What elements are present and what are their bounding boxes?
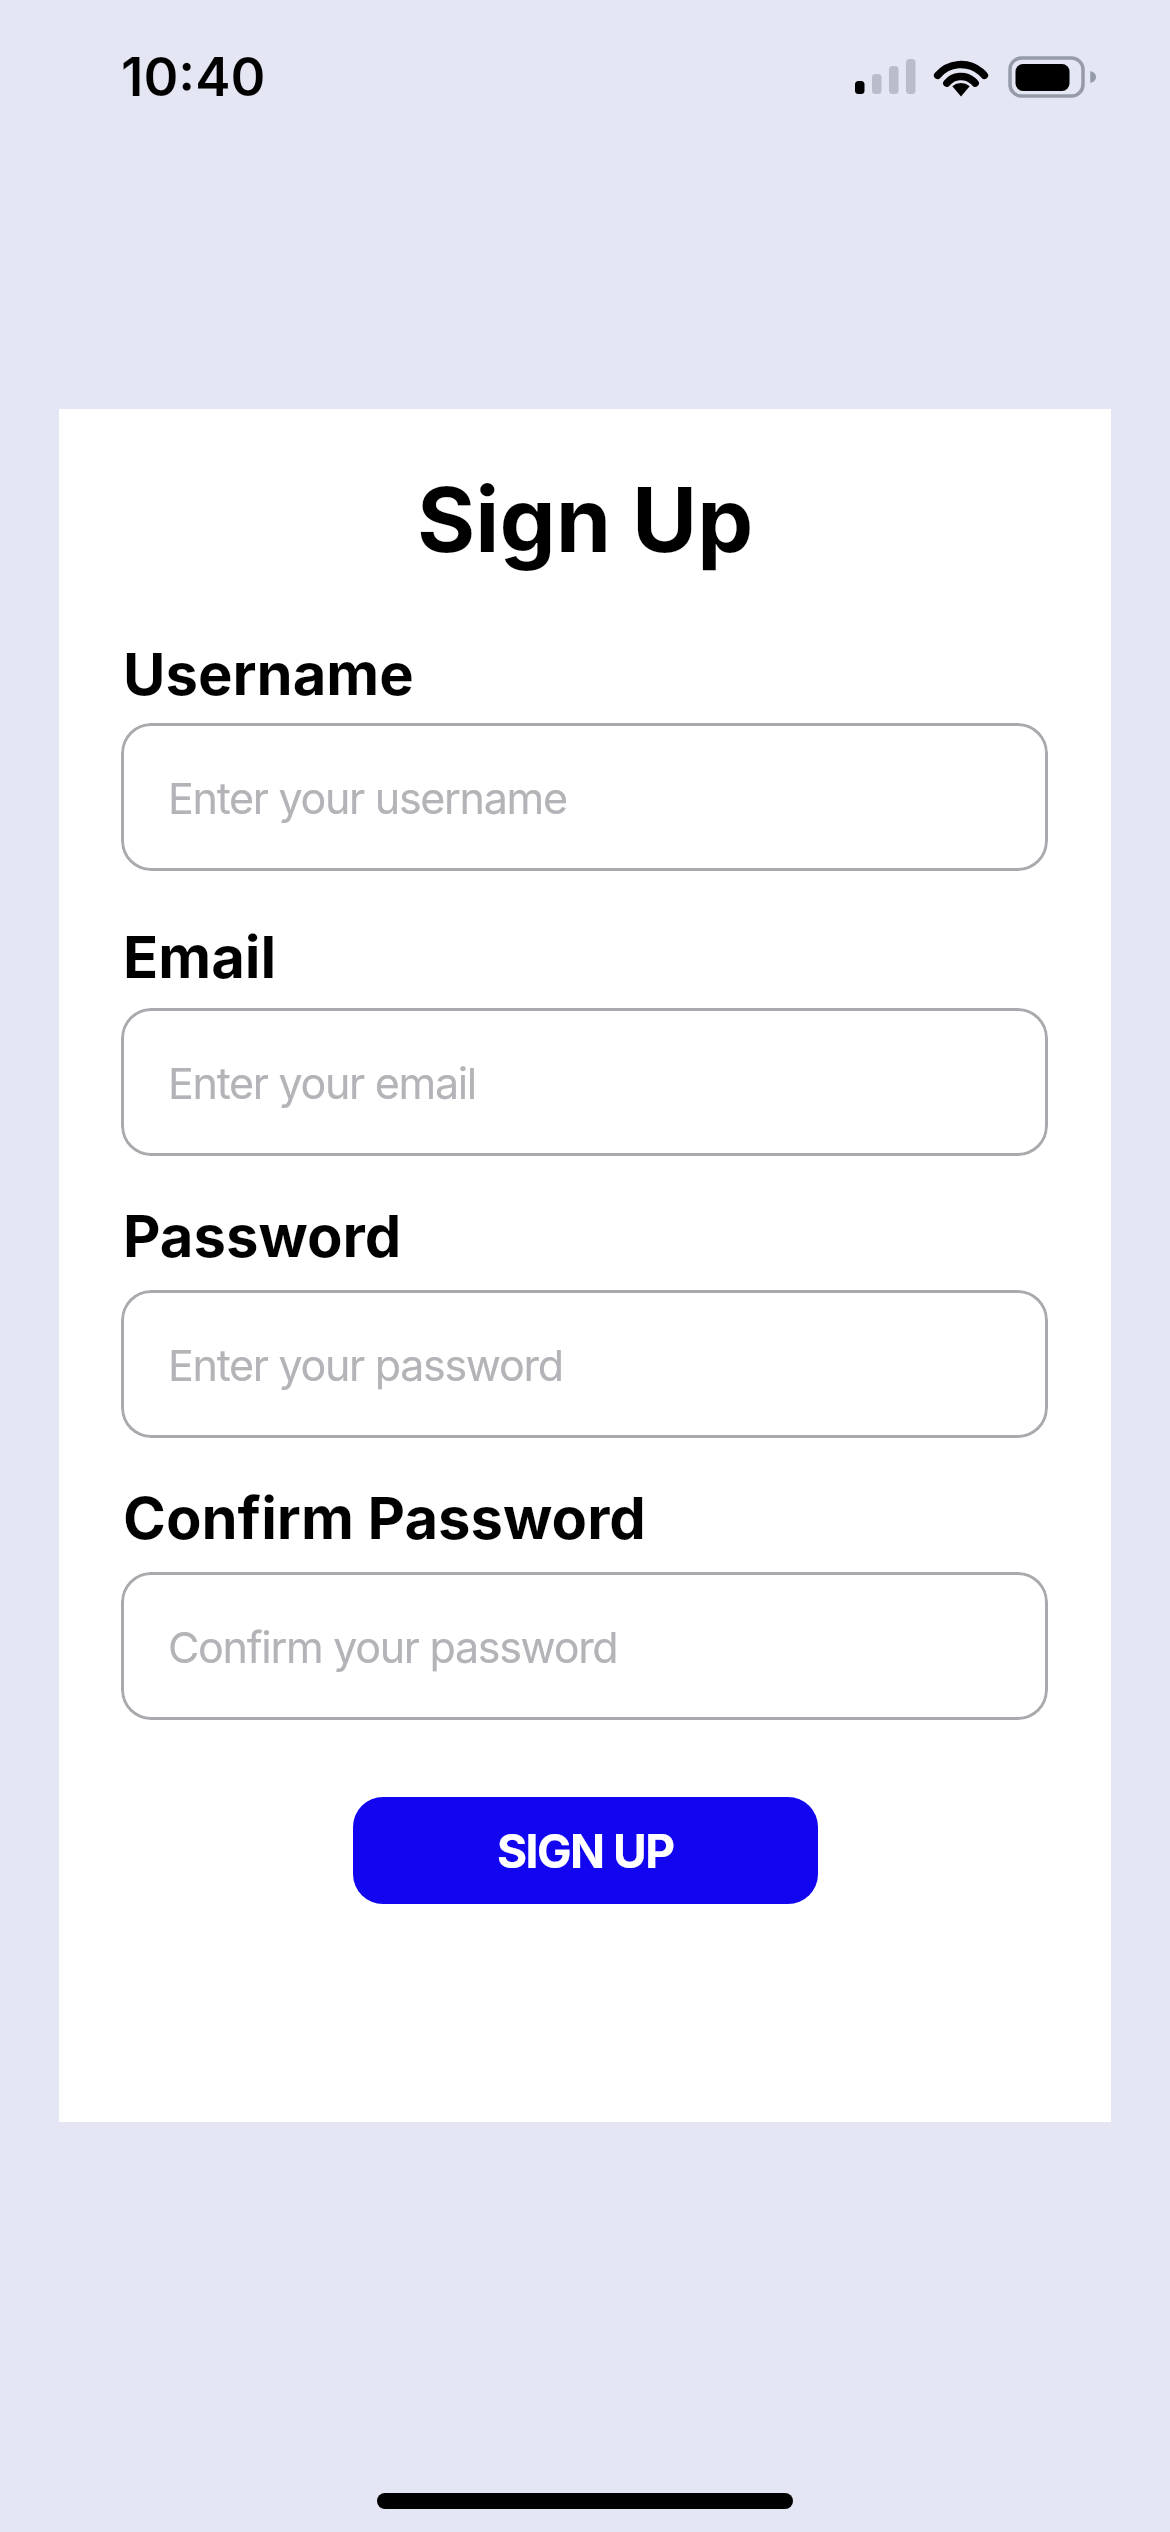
staticText: Enter your email	[168, 1057, 476, 1109]
staticText: 10:40	[121, 45, 266, 109]
staticText: Enter your password	[168, 1339, 563, 1391]
staticText: Username	[123, 639, 414, 709]
button[interactable]: Confirm your password	[121, 1572, 1048, 1720]
staticText: Confirm your password	[168, 1621, 618, 1673]
button[interactable]: Enter your username	[121, 723, 1048, 871]
button[interactable]: SIGN UP	[353, 1797, 818, 1904]
staticText: Enter your username	[168, 772, 567, 824]
staticText: Password	[123, 1201, 402, 1271]
staticText: Email	[123, 922, 277, 992]
staticText: Sign Up	[417, 466, 754, 574]
staticText: SIGN UP	[497, 1823, 674, 1879]
button[interactable]: Enter your password	[121, 1290, 1048, 1438]
staticText: Confirm Password	[123, 1483, 646, 1553]
button[interactable]: Enter your email	[121, 1008, 1048, 1156]
